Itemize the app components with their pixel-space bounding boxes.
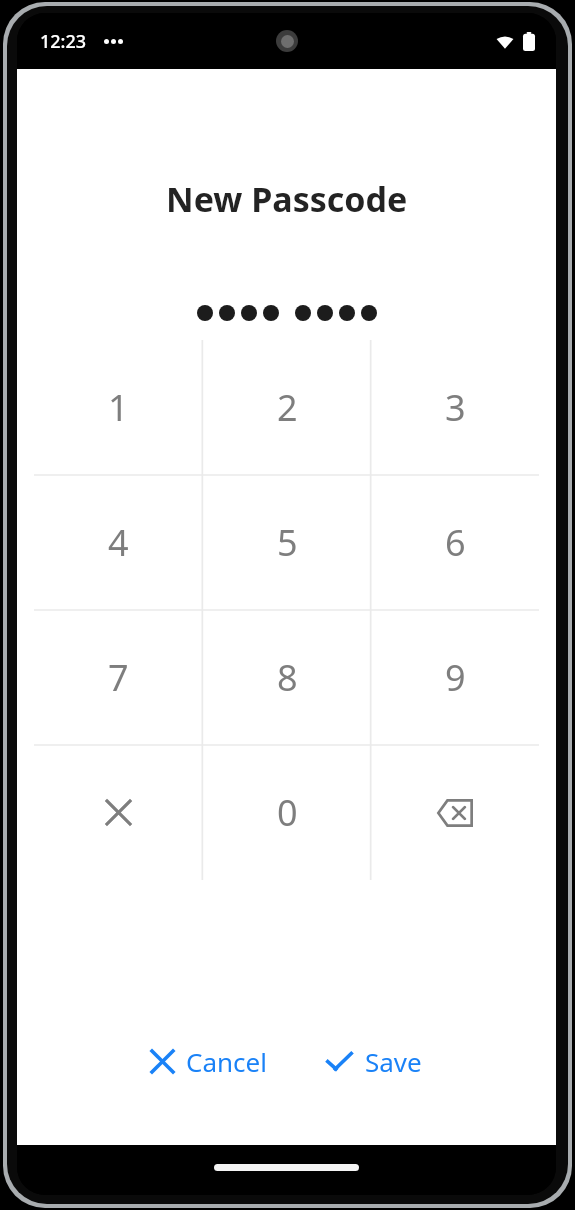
staticText: 4	[108, 518, 129, 567]
button[interactable]: 8	[203, 610, 371, 745]
staticText: New Passcode	[166, 176, 408, 222]
button[interactable]: 4	[34, 475, 203, 610]
button[interactable]: Clear	[34, 745, 203, 880]
staticText: 8	[277, 653, 298, 702]
staticText: 3	[445, 383, 466, 432]
staticText: 6	[445, 518, 466, 567]
staticText: 5	[277, 518, 298, 567]
staticText: 7	[108, 653, 129, 702]
button[interactable]: 6	[371, 475, 539, 610]
staticText: 0	[277, 788, 298, 837]
button[interactable]: 0	[203, 745, 371, 880]
button[interactable]: 9	[371, 610, 539, 745]
staticText: 1	[108, 383, 129, 432]
staticText: Save	[365, 1044, 422, 1079]
staticText: 12:23	[40, 29, 87, 54]
button[interactable]: Save	[317, 1036, 432, 1087]
button[interactable]: 1	[34, 340, 203, 475]
button[interactable]: Cancel	[142, 1036, 277, 1087]
button[interactable]: 2	[203, 340, 371, 475]
button[interactable]: 3	[371, 340, 539, 475]
staticText: 9	[445, 653, 466, 702]
staticText: 2	[277, 383, 298, 432]
button[interactable]: 7	[34, 610, 203, 745]
button[interactable]: 5	[203, 475, 371, 610]
button[interactable]: Backspace	[371, 745, 539, 880]
staticText: Cancel	[186, 1044, 267, 1079]
